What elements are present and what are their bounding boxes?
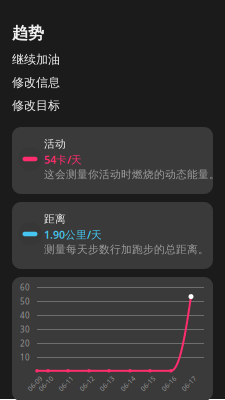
staticText: 距离: [44, 212, 66, 225]
staticText: 50: [20, 296, 30, 307]
button[interactable]: 活动: [12, 127, 213, 194]
staticText: 活动: [44, 137, 66, 150]
staticText: 1.90公里/天: [44, 227, 102, 242]
staticText: 06-09: [26, 379, 44, 388]
button[interactable]: 修改信息: [12, 71, 213, 94]
staticText: 06-16: [160, 379, 178, 388]
staticText: 趋势: [12, 23, 44, 43]
staticText: 修改信息: [12, 75, 60, 90]
staticText: 06-15: [139, 379, 157, 388]
staticText: 10: [20, 352, 30, 363]
staticText: 测量每天步数行加跑步的总距离。: [44, 243, 209, 256]
staticText: 这会测量你活动时燃烧的动态能量。: [44, 168, 220, 181]
staticText: 06-10: [37, 379, 55, 388]
staticText: 修改目标: [12, 98, 60, 113]
staticText: 20: [20, 338, 30, 349]
staticText: 40: [20, 310, 30, 321]
staticText: 06-17: [180, 379, 198, 388]
staticText: 继续加油: [12, 52, 60, 67]
button[interactable]: 距离: [12, 202, 213, 269]
staticText: 06-12: [78, 379, 96, 388]
staticText: 54卡/天: [44, 152, 82, 167]
staticText: 06-14: [119, 379, 137, 388]
staticText: 60: [20, 282, 30, 293]
staticText: 30: [20, 324, 30, 335]
staticText: 06-11: [57, 379, 75, 388]
staticText: 06-13: [98, 379, 116, 388]
button[interactable]: 继续加油: [12, 48, 213, 71]
button[interactable]: 修改目标: [12, 94, 213, 117]
